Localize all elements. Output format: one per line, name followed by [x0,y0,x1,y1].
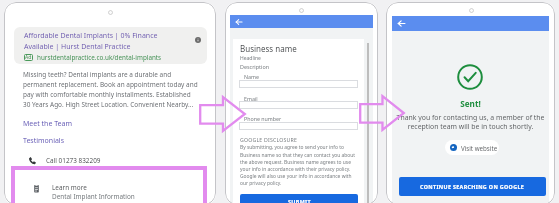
button[interactable]: CONTINUE SEARCHING ON GOOGLE [399,177,546,196]
staticText: Business name [240,43,297,54]
staticText: By submitting, you agree to send your in… [240,144,359,186]
staticText: Meet the Team [23,119,73,129]
button[interactable] [239,80,358,88]
staticText: Sent! [392,98,549,109]
staticText: Phone number [244,115,282,122]
staticText: Ad [25,54,32,61]
staticText: Email [244,95,258,102]
staticText: Name [244,73,259,80]
button[interactable]: Affordable Dental Implants | 0% Finance … [14,27,207,64]
staticText: Testimonials [23,136,65,146]
staticText: hurstdentalpractice.co.uk/dental-implant… [37,53,162,62]
other: Back [397,19,406,28]
staticText: Missing teeth? Dental implants are a dur… [23,70,198,108]
button[interactable]: SUBMIT [240,194,358,203]
button[interactable]: Visit website [445,140,499,155]
button[interactable] [239,122,358,130]
staticText: Headline [240,55,261,62]
staticText: Thank you for contacting us, a member of… [394,113,547,131]
button[interactable] [239,101,358,109]
staticText: Dental Implant Information [52,192,135,201]
staticText: Learn more [52,183,87,192]
staticText: Visit website [461,144,498,152]
staticText: Affordable Dental Implants | 0% Finance … [24,31,158,51]
other: Next step [199,96,246,132]
staticText: CONTINUE SEARCHING ON GOOGLE [420,183,525,190]
other: Next step [359,95,405,131]
staticText: SUBMIT [288,198,311,203]
staticText: Description [240,63,270,70]
button[interactable]: Learn more [15,170,203,203]
staticText: Call 01273 832209 [46,156,101,165]
staticText: GOOGLE DISCLOSURE [240,136,298,143]
other: Back [235,18,243,26]
